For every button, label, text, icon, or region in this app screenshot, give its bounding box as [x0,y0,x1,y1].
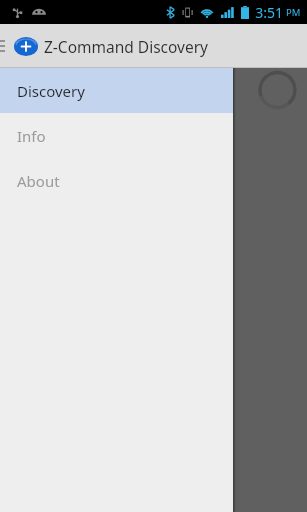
staticText: 3:51 [255,3,283,22]
staticText: Z-Command Discovery [44,36,209,57]
staticText: About [17,171,60,191]
staticText: Discovery [17,81,85,101]
button[interactable]: Discovery [0,68,233,113]
staticText: Info [17,126,46,146]
button[interactable]: Open navigation drawer [0,24,14,68]
button[interactable]: Info [0,113,233,158]
staticText: PM [286,6,301,19]
button[interactable]: About [0,158,233,203]
